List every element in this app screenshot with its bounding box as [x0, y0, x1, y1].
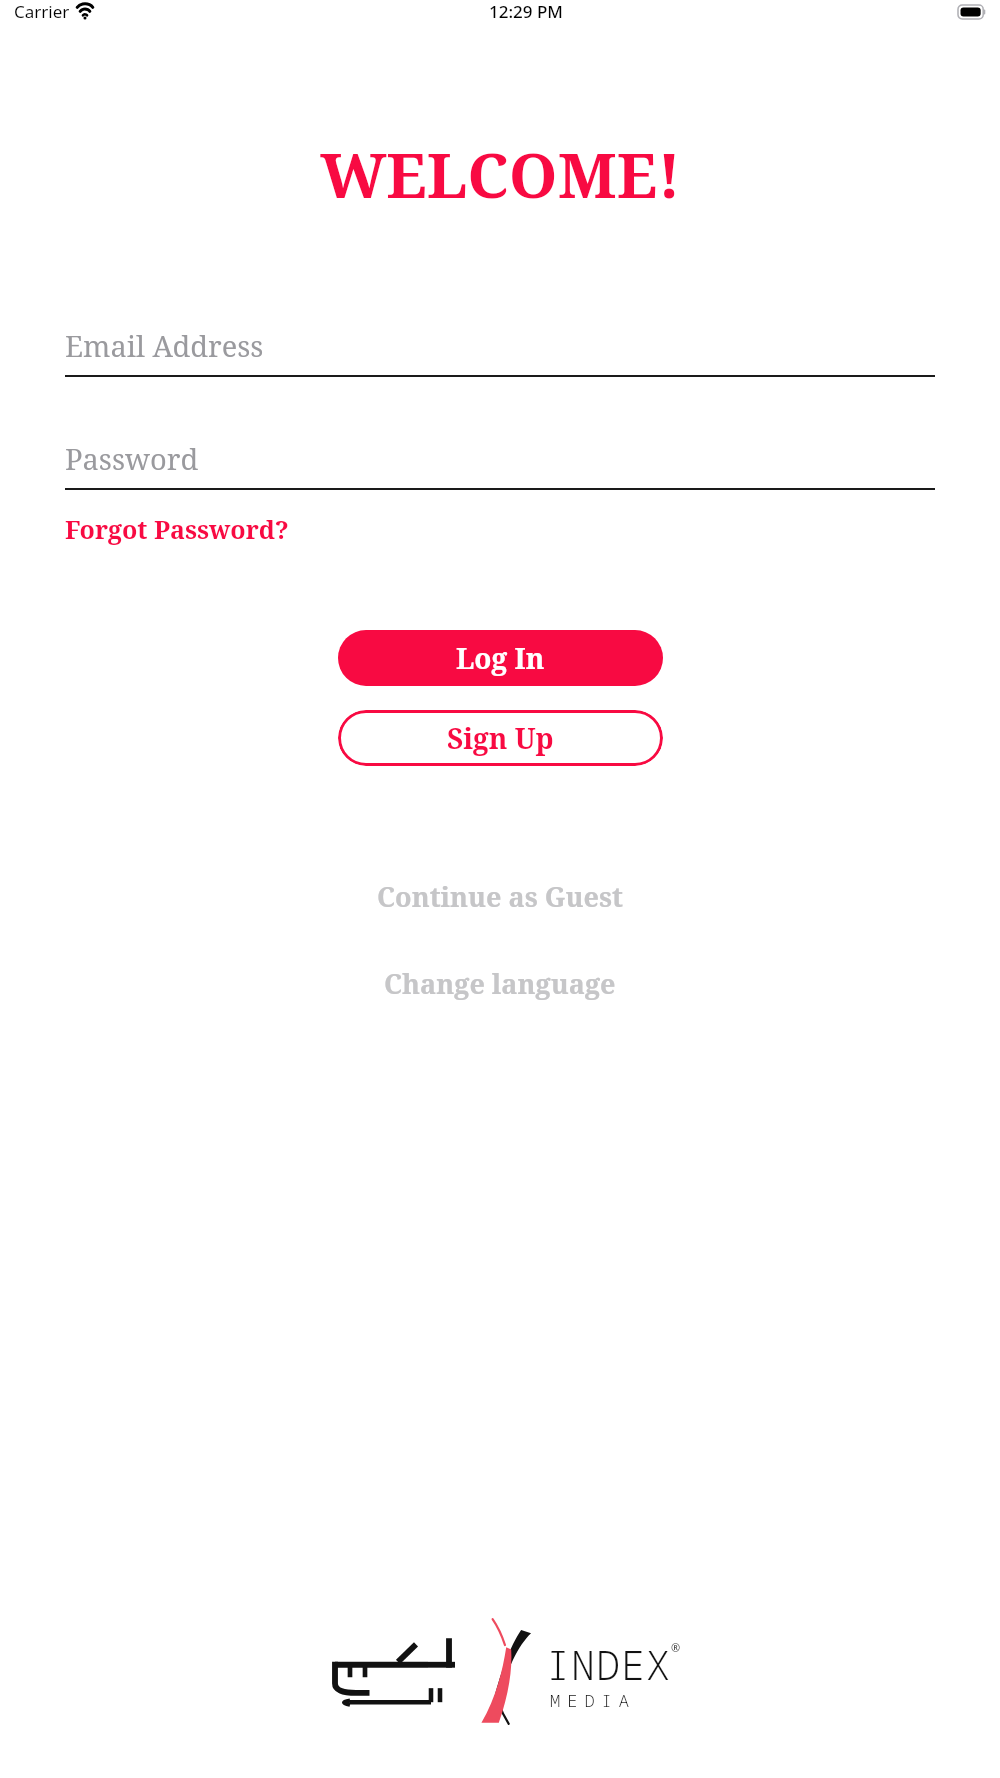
staticText: ®	[671, 1640, 681, 1655]
staticText: INDEX	[546, 1637, 671, 1691]
staticText: 12:29 PM	[489, 0, 563, 23]
button[interactable]: Log In	[338, 630, 663, 686]
button[interactable]: Email Address	[65, 326, 935, 377]
staticText: WELCOME!	[320, 132, 681, 216]
staticText: Change language	[384, 965, 616, 1002]
other: Index Media logo	[320, 1616, 681, 1726]
staticText: Email Address	[65, 326, 264, 365]
button[interactable]: Change language	[360, 959, 640, 1008]
staticText: Log In	[456, 639, 545, 677]
staticText: Forgot Password?	[65, 512, 289, 546]
staticText: MEDIA	[550, 1689, 636, 1712]
staticText: Carrier	[14, 0, 70, 23]
button[interactable]: Sign Up	[338, 710, 663, 766]
staticText: Sign Up	[447, 719, 554, 757]
staticText: Password	[65, 439, 199, 478]
button[interactable]: Continue as Guest	[353, 872, 647, 921]
staticText: Continue as Guest	[377, 878, 623, 915]
button[interactable]: Forgot Password?	[65, 508, 289, 550]
button[interactable]: Password	[65, 439, 935, 490]
